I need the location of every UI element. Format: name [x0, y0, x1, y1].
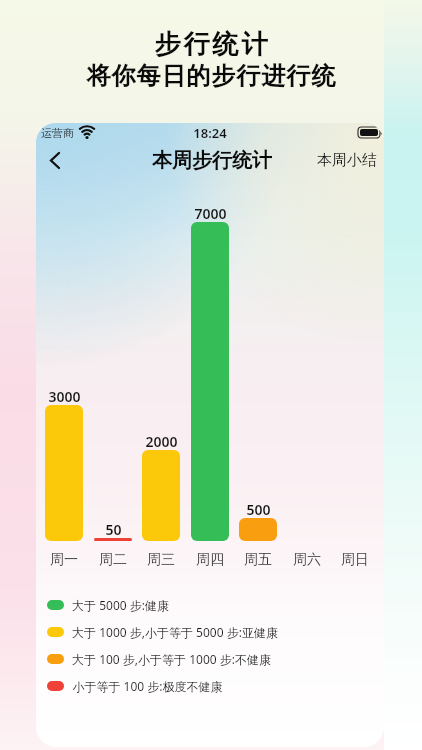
staticText: 500: [246, 500, 271, 516]
staticText: 周四: [196, 551, 224, 569]
staticText: 步行统计: [153, 28, 269, 58]
staticText: 本周小结: [317, 151, 377, 170]
staticText: 运营商: [41, 126, 74, 140]
staticText: 大于 1000 步,小于等于 5000 步:亚健康: [72, 624, 278, 640]
staticText: 周日: [341, 551, 369, 569]
staticText: 周二: [99, 551, 127, 569]
staticText: 2000: [145, 432, 178, 448]
button[interactable]: 本周小结: [314, 147, 380, 173]
button[interactable]: [43, 148, 67, 173]
staticText: 50: [105, 520, 122, 536]
staticText: 大于 5000 步:健康: [72, 597, 169, 613]
staticText: 3000: [48, 387, 81, 403]
staticText: 小于等于 100 步:极度不健康: [72, 678, 223, 694]
staticText: 周五: [244, 551, 272, 569]
staticText: 大于 100 步,小于等于 1000 步:不健康: [72, 651, 271, 667]
staticText: 将你每日的步行进行统: [86, 61, 336, 91]
staticText: 7000: [194, 204, 227, 220]
staticText: 本周步行统计: [152, 148, 272, 173]
staticText: 18:24: [193, 124, 227, 142]
staticText: 周六: [293, 551, 321, 569]
staticText: 周一: [50, 551, 78, 569]
staticText: 周三: [147, 551, 175, 569]
